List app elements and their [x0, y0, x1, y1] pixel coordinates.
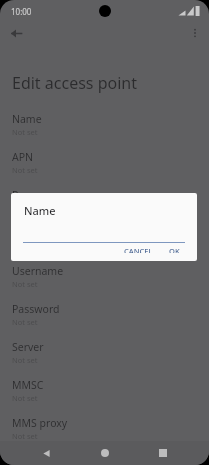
staticText: Not set [12, 355, 38, 365]
staticText: Not set [12, 431, 38, 441]
staticText: Username [12, 264, 64, 278]
button[interactable]: Server [0, 336, 209, 374]
button[interactable]: Proxy [0, 184, 209, 222]
button[interactable]: APN [0, 146, 209, 184]
staticText: Edit access point [12, 72, 137, 94]
button[interactable]: MMS port [0, 450, 209, 465]
staticText: Not set [12, 203, 38, 213]
button[interactable]: MMS proxy [0, 412, 209, 450]
staticText: MMS port [12, 454, 61, 465]
staticText: Not set [12, 279, 38, 289]
button[interactable]: Port [0, 222, 209, 260]
button[interactable]: Back [34, 441, 58, 465]
staticText: Server [12, 340, 44, 354]
button[interactable]: Password [0, 298, 209, 336]
staticText: APN [12, 150, 34, 164]
staticText: Not set [12, 165, 38, 175]
staticText: MMS proxy [12, 416, 68, 430]
button[interactable]: Username [0, 260, 209, 298]
button[interactable] [23, 233, 185, 243]
button[interactable]: Home [93, 441, 117, 465]
button[interactable]: Name [0, 108, 209, 146]
staticText: OK [169, 246, 180, 253]
staticText: Not set [12, 317, 38, 327]
button[interactable]: Back [5, 22, 27, 44]
staticText: CANCEL [124, 246, 153, 253]
staticText: 10:00 [11, 6, 32, 17]
button[interactable]: More options [184, 22, 206, 44]
staticText: Password [12, 302, 60, 316]
button[interactable]: OK [164, 243, 185, 256]
button[interactable]: CANCEL [119, 243, 158, 256]
staticText: Not set [12, 241, 38, 251]
button[interactable]: Recent apps [151, 441, 175, 465]
staticText: Name [24, 203, 56, 218]
staticText: Name [12, 112, 42, 126]
staticText: Proxy [12, 188, 40, 202]
button[interactable]: MMSC [0, 374, 209, 412]
staticText: MMSC [12, 378, 44, 392]
staticText: Not set [12, 393, 38, 403]
staticText: Not set [12, 127, 38, 137]
